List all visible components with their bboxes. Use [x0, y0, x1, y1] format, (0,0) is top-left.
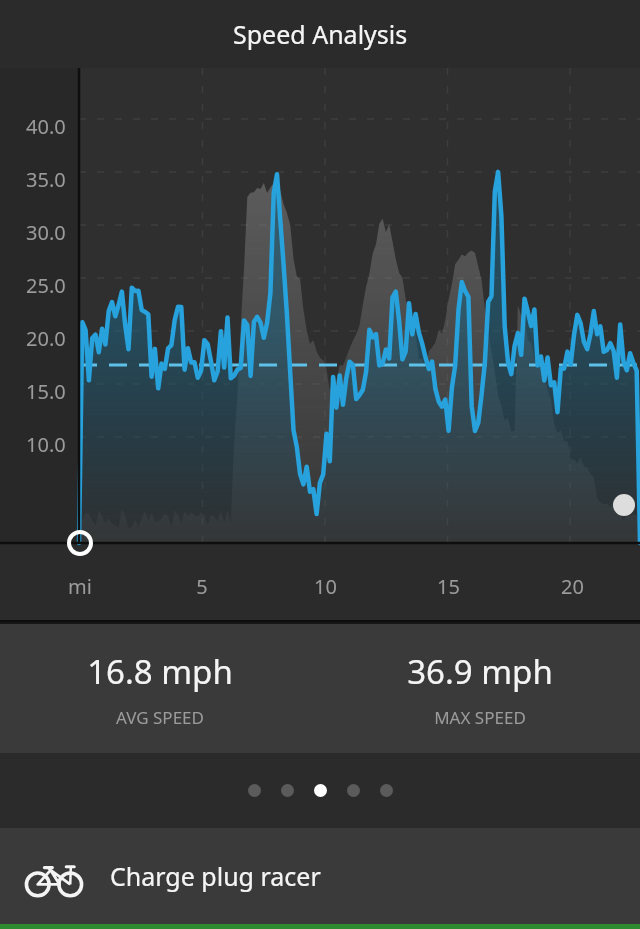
staticText: Speed Analysis — [233, 17, 408, 51]
button[interactable]: Page 4 — [347, 784, 360, 797]
staticText: 20.0 — [26, 325, 66, 352]
staticText: 36.9 mph — [407, 649, 553, 694]
staticText: 40.0 — [26, 113, 66, 140]
button[interactable]: Page 1 — [248, 784, 261, 797]
button[interactable]: Page 2 — [281, 784, 294, 797]
staticText: 30.0 — [26, 219, 66, 246]
staticText: 5 — [196, 573, 208, 600]
staticText: 10.0 — [26, 431, 66, 458]
staticText: 15.0 — [26, 378, 66, 405]
staticText: mi — [68, 573, 92, 600]
staticText: 35.0 — [26, 166, 66, 193]
staticText: Charge plug racer — [110, 859, 321, 893]
staticText: 16.8 mph — [87, 649, 233, 694]
button[interactable]: Bike activity — [0, 828, 640, 924]
other: Bike activity — [26, 855, 82, 897]
button[interactable]: 36.9 mph — [320, 649, 640, 729]
staticText: 10 — [314, 573, 337, 600]
staticText: MAX SPEED — [434, 706, 526, 729]
staticText: 25.0 — [26, 272, 66, 299]
staticText: 15 — [437, 573, 460, 600]
button[interactable]: Page 5 — [380, 784, 393, 797]
button[interactable]: Page 3 — [314, 784, 327, 797]
staticText: AVG SPEED — [116, 706, 204, 729]
staticText: 20 — [561, 573, 584, 600]
button[interactable]: 16.8 mph — [0, 649, 320, 729]
